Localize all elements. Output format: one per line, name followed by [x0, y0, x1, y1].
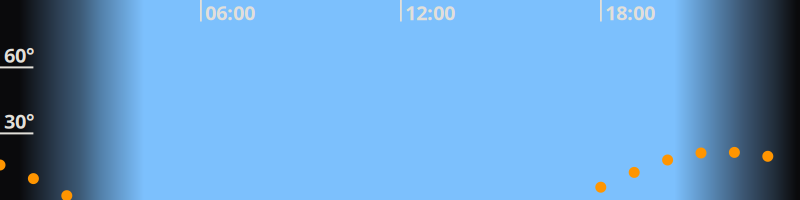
- staticText: 06:00: [205, 0, 255, 26]
- staticText: 18:00: [605, 0, 655, 26]
- staticText: 12:00: [405, 0, 455, 26]
- staticText: 60°: [4, 42, 34, 68]
- staticText: 30°: [4, 108, 34, 134]
